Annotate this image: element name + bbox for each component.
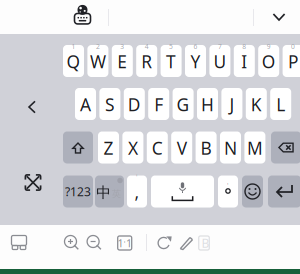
staticText: 6 bbox=[193, 42, 197, 51]
staticText: 2 bbox=[96, 42, 100, 51]
staticText: X bbox=[128, 136, 138, 159]
button[interactable] bbox=[147, 131, 168, 163]
button[interactable] bbox=[75, 88, 96, 120]
staticText: 5 bbox=[169, 42, 173, 51]
staticText: 英 bbox=[112, 188, 121, 200]
staticText: I bbox=[241, 50, 247, 73]
button[interactable] bbox=[244, 131, 265, 163]
button[interactable]: Display layout bbox=[6, 230, 32, 256]
staticText: , bbox=[134, 180, 139, 203]
button[interactable] bbox=[122, 131, 143, 163]
button[interactable]: 0 bbox=[283, 45, 300, 77]
staticText: 3 bbox=[120, 42, 124, 51]
button[interactable] bbox=[270, 88, 291, 120]
staticText: V bbox=[177, 136, 187, 159]
staticText: S bbox=[105, 93, 115, 116]
button[interactable]: 3 bbox=[112, 45, 133, 77]
button[interactable]: Space bbox=[151, 175, 214, 207]
button[interactable]: 7 bbox=[209, 45, 230, 77]
staticText: ?123 bbox=[65, 183, 91, 199]
staticText: L bbox=[276, 93, 285, 116]
staticText: J bbox=[229, 93, 234, 116]
staticText: 1 bbox=[126, 236, 132, 250]
button[interactable]: 5 bbox=[161, 45, 182, 77]
button[interactable]: 4 bbox=[136, 45, 157, 77]
button[interactable]: Emoji bbox=[242, 175, 263, 207]
button[interactable]: Return bbox=[268, 175, 300, 207]
staticText: M bbox=[247, 136, 263, 159]
staticText: ' bbox=[227, 181, 229, 190]
staticText: 7 bbox=[218, 42, 222, 51]
button[interactable] bbox=[98, 131, 119, 163]
button[interactable]: Refresh bbox=[151, 230, 177, 256]
staticText: P bbox=[288, 50, 298, 73]
button[interactable]: Previous bbox=[19, 94, 45, 120]
staticText: O bbox=[262, 50, 276, 73]
button[interactable] bbox=[197, 88, 218, 120]
staticText: A bbox=[80, 93, 91, 116]
button[interactable]: Zoom out bbox=[82, 230, 108, 256]
staticText: E bbox=[117, 50, 127, 73]
button[interactable] bbox=[221, 88, 242, 120]
staticText: Q bbox=[66, 50, 80, 73]
staticText: 1 bbox=[117, 236, 123, 250]
staticText: U bbox=[213, 50, 226, 73]
staticText: 9 bbox=[267, 42, 271, 51]
button[interactable]: Actual size bbox=[112, 230, 138, 256]
staticText: 1 bbox=[71, 42, 75, 51]
button[interactable]: Expand bbox=[20, 169, 46, 195]
button[interactable] bbox=[220, 131, 241, 163]
staticText: D bbox=[128, 93, 141, 116]
staticText: 0 bbox=[291, 42, 295, 51]
staticText: B bbox=[201, 136, 212, 159]
button[interactable]: Switch input language bbox=[67, 0, 97, 28]
button[interactable] bbox=[124, 88, 145, 120]
button[interactable]: Chinese English toggle bbox=[95, 175, 124, 207]
staticText: Z bbox=[103, 136, 113, 159]
button[interactable] bbox=[148, 88, 169, 120]
button[interactable]: Zoom in bbox=[59, 230, 85, 256]
button[interactable]: Document bbox=[191, 230, 217, 256]
staticText: C bbox=[152, 136, 163, 159]
button[interactable]: ' bbox=[127, 175, 147, 207]
button[interactable]: Period bbox=[218, 175, 238, 207]
button[interactable]: 6 bbox=[185, 45, 206, 77]
staticText: H bbox=[201, 93, 214, 116]
button[interactable] bbox=[173, 88, 194, 120]
button[interactable] bbox=[196, 131, 217, 163]
button[interactable] bbox=[99, 88, 120, 120]
staticText: G bbox=[177, 93, 190, 116]
staticText: N bbox=[224, 136, 237, 159]
button[interactable]: Shift bbox=[63, 131, 93, 163]
staticText: R bbox=[141, 50, 152, 73]
staticText: 8 bbox=[242, 42, 246, 51]
button[interactable] bbox=[171, 131, 192, 163]
staticText: 中 bbox=[96, 183, 111, 201]
button[interactable]: 9 bbox=[258, 45, 279, 77]
button[interactable]: Edit bbox=[173, 230, 199, 256]
button[interactable]: Backspace bbox=[271, 131, 300, 163]
button[interactable]: 8 bbox=[234, 45, 255, 77]
button[interactable] bbox=[246, 88, 267, 120]
staticText: F bbox=[154, 93, 163, 116]
button[interactable]: 1 bbox=[63, 45, 84, 77]
button[interactable]: Numbers and symbols bbox=[63, 175, 93, 207]
staticText: K bbox=[251, 93, 262, 116]
button[interactable]: 2 bbox=[87, 45, 108, 77]
staticText: 4 bbox=[145, 42, 149, 51]
staticText: T bbox=[166, 50, 176, 73]
button[interactable]: Hide keyboard bbox=[264, 3, 294, 31]
staticText: ' bbox=[136, 173, 138, 181]
staticText: W bbox=[90, 50, 106, 73]
staticText: B bbox=[201, 235, 209, 251]
staticText: Y bbox=[190, 50, 200, 73]
